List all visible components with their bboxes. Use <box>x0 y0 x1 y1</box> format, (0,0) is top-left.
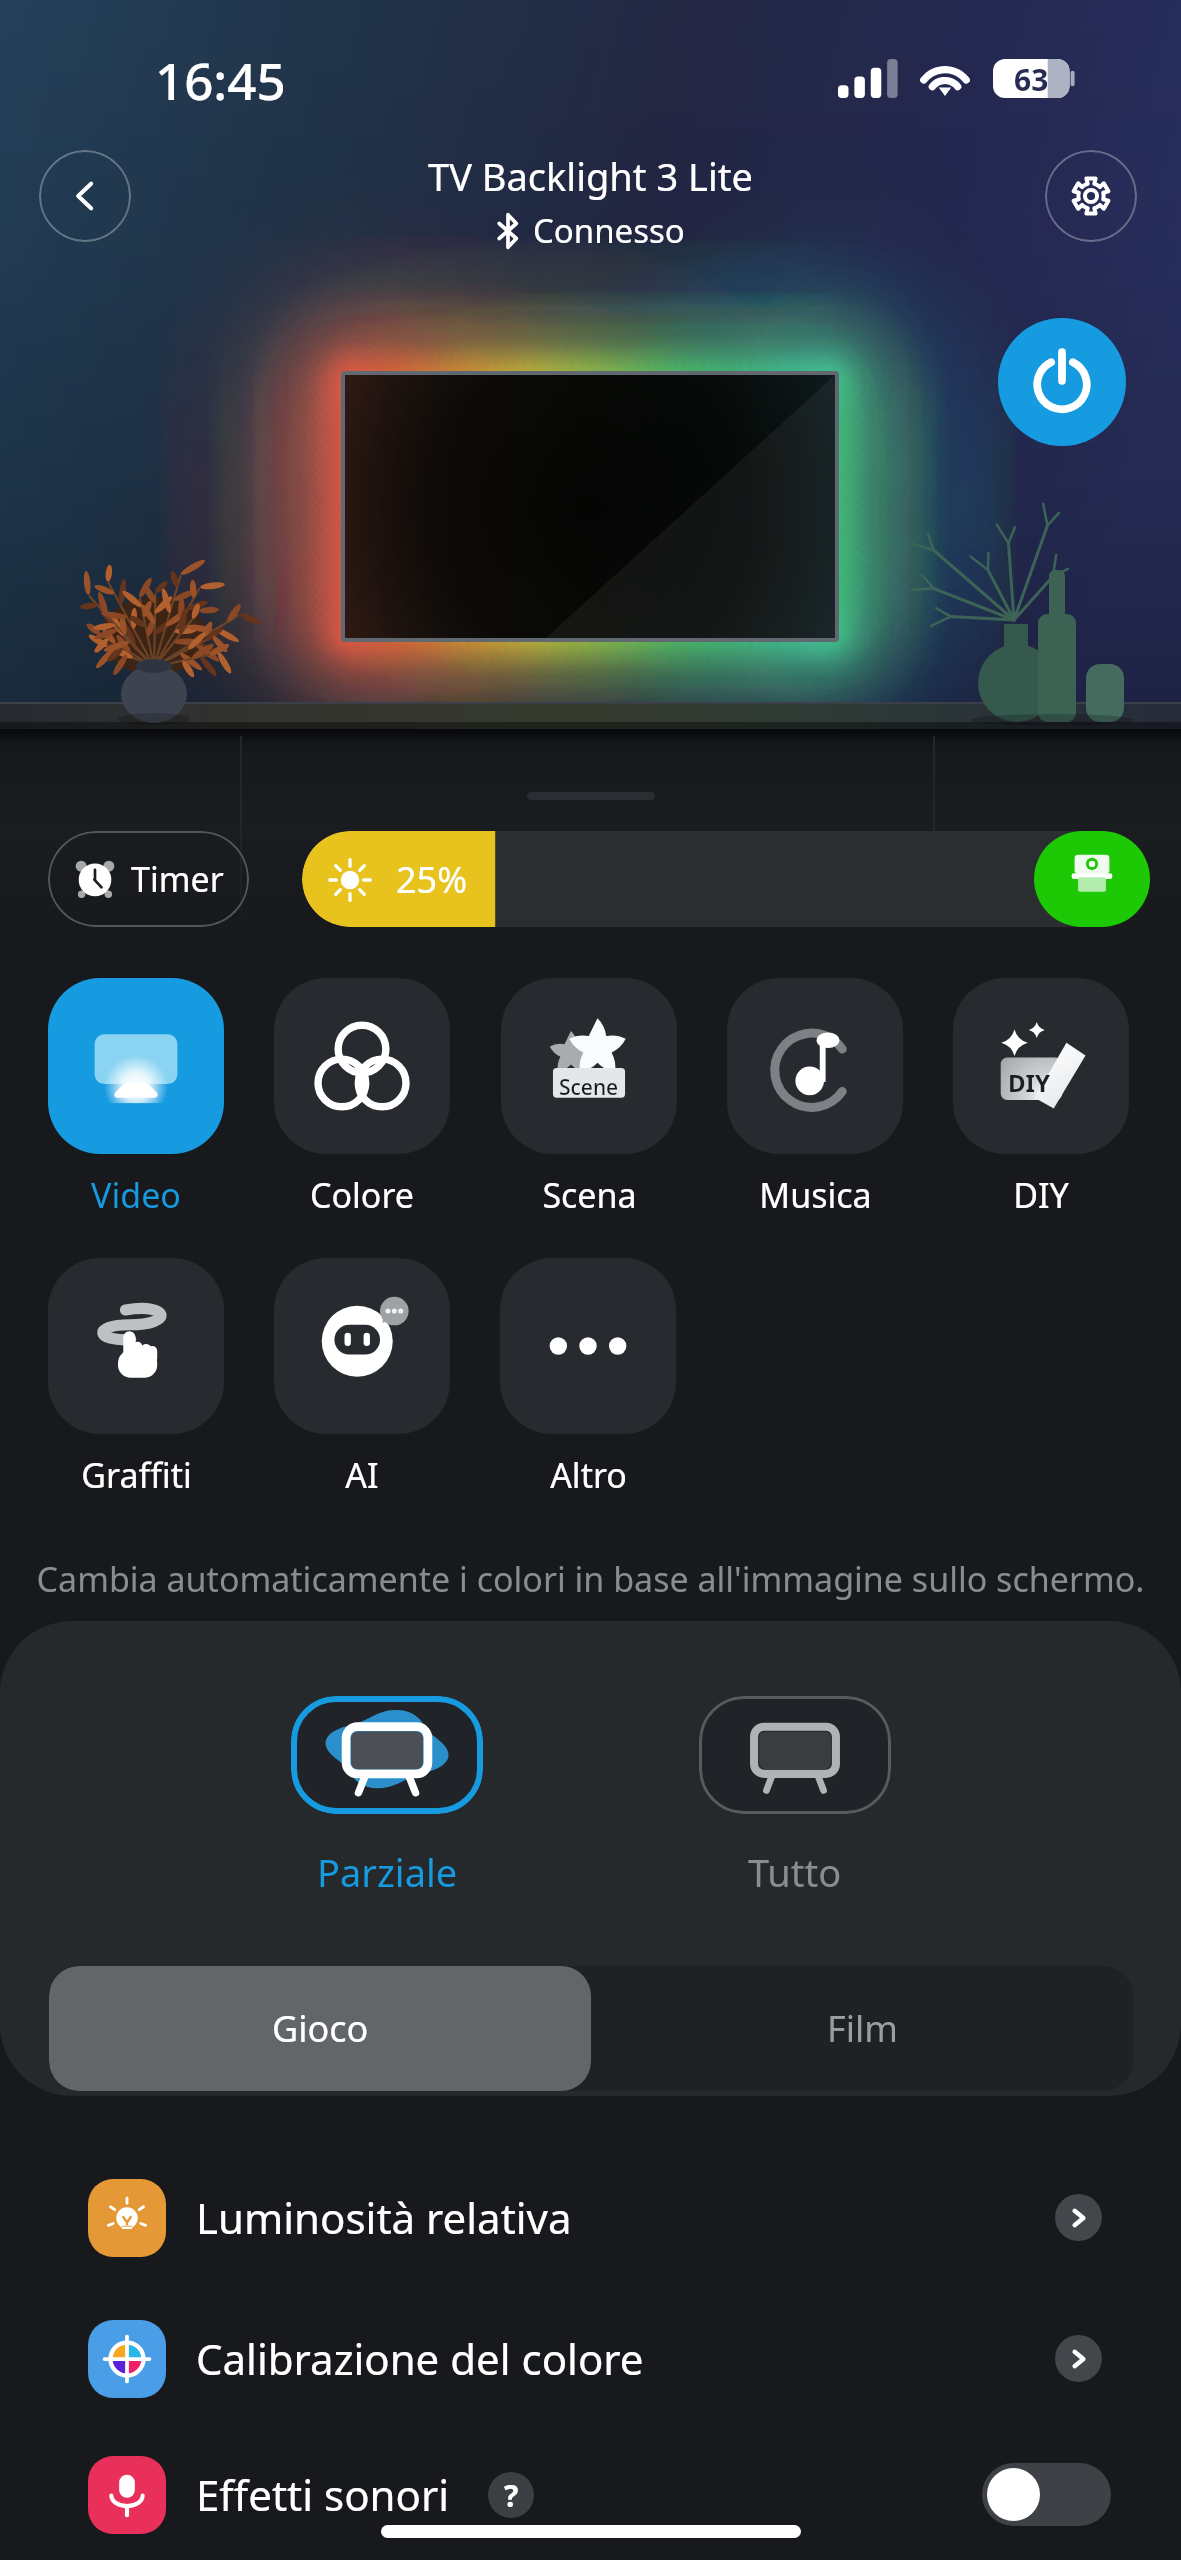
staticText: Film <box>827 2004 898 2053</box>
staticText: Video <box>91 1172 181 1218</box>
button[interactable]: Musica <box>727 978 903 1218</box>
staticText: Tutto <box>748 1846 842 1898</box>
staticText: Connesso <box>533 208 685 253</box>
staticText: DIY <box>1008 1066 1050 1099</box>
staticText: 63 <box>1014 59 1049 98</box>
staticText: Cambia automaticamente i colori in base … <box>30 1556 1151 1602</box>
button[interactable]: Scene <box>501 978 677 1218</box>
staticText: 16:45 <box>155 45 286 114</box>
button[interactable]: Timer <box>48 831 249 927</box>
staticText: Luminosità relativa <box>196 2189 572 2246</box>
staticText: Gioco <box>272 2004 369 2053</box>
button[interactable]: Sound effects toggle <box>982 2463 1111 2526</box>
button[interactable]: Settings <box>1045 150 1137 242</box>
button[interactable]: Film <box>591 1966 1133 2091</box>
button[interactable]: Gioco <box>49 1966 591 2091</box>
staticText: Effetti sonori <box>196 2466 450 2523</box>
button[interactable]: Video <box>48 978 224 1218</box>
button[interactable]: Help <box>488 2472 534 2518</box>
staticText: Scena <box>542 1172 637 1218</box>
button[interactable]: Calibrazione del colore <box>0 2288 1181 2429</box>
staticText: Scene <box>559 1073 619 1102</box>
button[interactable]: Graffiti <box>48 1258 224 1498</box>
button[interactable]: Luminosità relativa <box>0 2147 1181 2288</box>
button[interactable] <box>302 831 1133 927</box>
staticText: Calibrazione del colore <box>196 2330 644 2387</box>
staticText: TV Backlight 3 Lite <box>428 150 753 202</box>
staticText: AI <box>345 1452 379 1498</box>
button[interactable]: Effetti sonori <box>0 2429 1181 2560</box>
button[interactable]: Back <box>39 150 131 242</box>
button[interactable]: DIY <box>953 978 1129 1218</box>
staticText: 25% <box>396 855 468 904</box>
button[interactable]: Tutto <box>699 1696 891 1898</box>
button[interactable]: Altro <box>500 1258 676 1498</box>
button[interactable]: AI <box>274 1258 450 1498</box>
staticText: Timer <box>131 856 224 902</box>
staticText: DIY <box>1013 1172 1069 1218</box>
button[interactable]: Screen mirror sync <box>1034 831 1150 927</box>
button[interactable]: Parziale <box>291 1696 483 1898</box>
button[interactable]: Power <box>998 318 1126 446</box>
staticText: Altro <box>550 1452 627 1498</box>
staticText: ? <box>504 2475 519 2516</box>
staticText: Graffiti <box>81 1452 192 1498</box>
staticText: Colore <box>310 1172 414 1218</box>
button[interactable]: Colore <box>274 978 450 1218</box>
staticText: Parziale <box>317 1846 458 1898</box>
staticText: Musica <box>759 1172 872 1218</box>
